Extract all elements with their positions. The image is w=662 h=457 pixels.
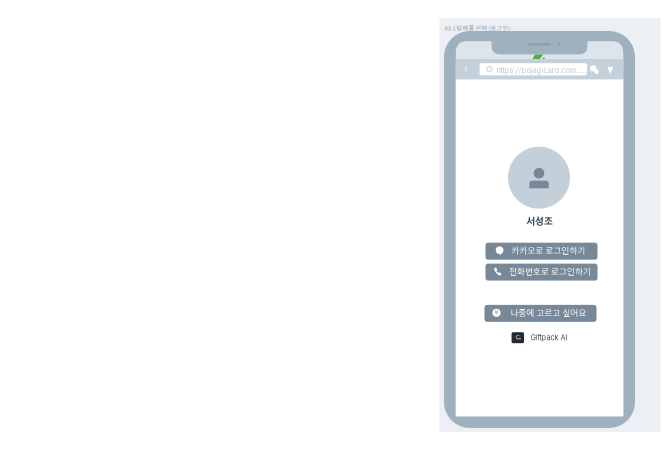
staticText: Giftpack AI [530,333,567,342]
button[interactable]: 나중에 고르고 싶어요 [484,305,596,322]
staticText: 나중에 고르고 싶어요 [510,306,586,318]
staticText: 서성조 [526,213,553,227]
staticText: 카카오로 로그인하기 [511,244,585,256]
staticText: #3-1 답례품 선택 (로그인) [444,23,510,32]
button[interactable]: Tabs [589,64,601,76]
staticText: 전화번호로 로그인하기 [509,265,591,277]
staticText: https://bojagicard.com....... [497,66,591,75]
button[interactable]: 카카오로 로그인하기 [485,243,597,260]
button[interactable]: Menu [605,64,617,76]
button[interactable]: 전화번호로 로그인하기 [485,264,597,281]
button[interactable]: Back [461,63,473,75]
